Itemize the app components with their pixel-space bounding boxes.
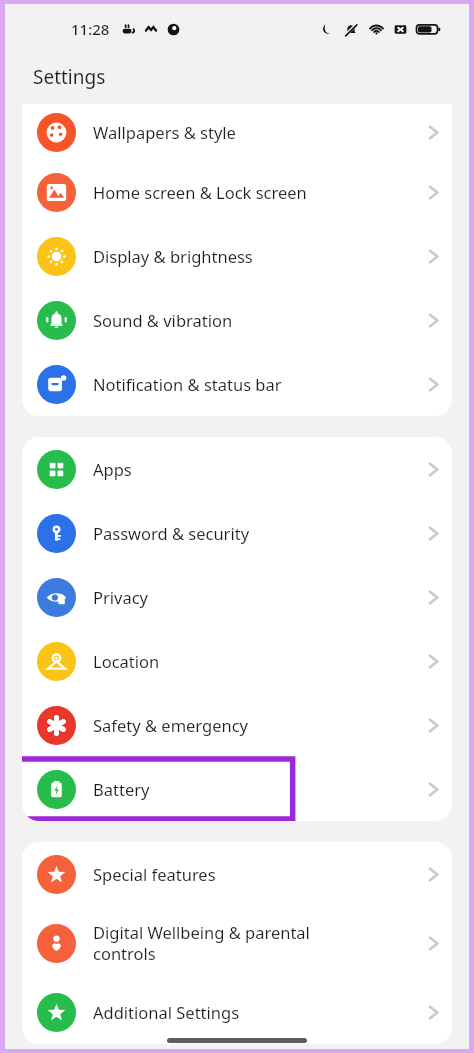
button[interactable]: Additional Settings: [22, 980, 452, 1044]
staticText: Apps: [93, 458, 132, 480]
button[interactable]: Wallpapers & style: [22, 104, 452, 160]
staticText: Settings: [33, 64, 106, 90]
button[interactable]: Display & brightness: [22, 224, 452, 288]
staticText: Password & security: [93, 522, 250, 544]
button[interactable]: Sound & vibration: [22, 288, 452, 352]
staticText: Wallpapers & style: [93, 121, 236, 143]
button[interactable]: Apps: [22, 437, 452, 501]
button[interactable]: Battery: [22, 757, 452, 821]
staticText: Privacy: [93, 586, 149, 608]
staticText: Safety & emergency: [93, 714, 249, 736]
staticText: Digital Wellbeing & parental controls: [93, 921, 310, 965]
staticText: Location: [93, 650, 160, 672]
staticText: Notification & status bar: [93, 373, 282, 395]
button[interactable]: Safety & emergency: [22, 693, 452, 757]
button[interactable]: Special features: [22, 842, 452, 906]
staticText: Special features: [93, 863, 216, 885]
button[interactable]: Password & security: [22, 501, 452, 565]
staticText: Sound & vibration: [93, 309, 233, 331]
staticText: Home screen & Lock screen: [93, 181, 307, 203]
button[interactable]: Privacy: [22, 565, 452, 629]
staticText: Battery: [93, 778, 150, 800]
staticText: Display & brightness: [93, 245, 253, 267]
staticText: 11:28: [71, 19, 110, 39]
staticText: Additional Settings: [93, 1001, 240, 1023]
button[interactable]: Home screen & Lock screen: [22, 160, 452, 224]
button[interactable]: Digital Wellbeing & parental controls: [22, 906, 452, 980]
button[interactable]: Notification & status bar: [22, 352, 452, 416]
button[interactable]: Location: [22, 629, 452, 693]
